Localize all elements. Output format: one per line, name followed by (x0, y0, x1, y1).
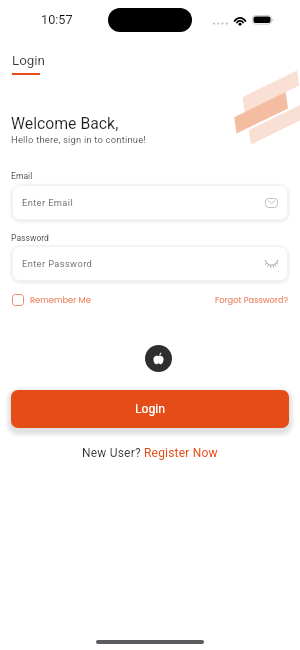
button[interactable]: Login (12, 53, 46, 75)
staticText: Hello there, sign in to continue! (11, 134, 146, 145)
button[interactable]: Sign in with Apple (145, 345, 172, 372)
staticText: 10:57 (41, 12, 73, 27)
button[interactable]: Remember Me (12, 294, 91, 306)
staticText: Welcome Back, (11, 114, 119, 133)
staticText: Forgot Password? (215, 294, 288, 306)
staticText: Login (135, 402, 166, 416)
staticText: Remember Me (30, 294, 91, 306)
button[interactable]: Forgot Password? (215, 294, 288, 306)
staticText: Enter Email (22, 197, 74, 208)
button[interactable]: Enter Email (12, 185, 288, 220)
button[interactable]: Login (11, 390, 289, 428)
staticText: Login (12, 53, 46, 69)
staticText: Enter Password (22, 258, 93, 269)
button[interactable]: Register Now (144, 446, 218, 460)
button[interactable]: Enter Password (12, 246, 288, 281)
staticText: New User? (82, 446, 144, 460)
staticText: Email (11, 171, 33, 181)
staticText: Password (11, 233, 49, 243)
